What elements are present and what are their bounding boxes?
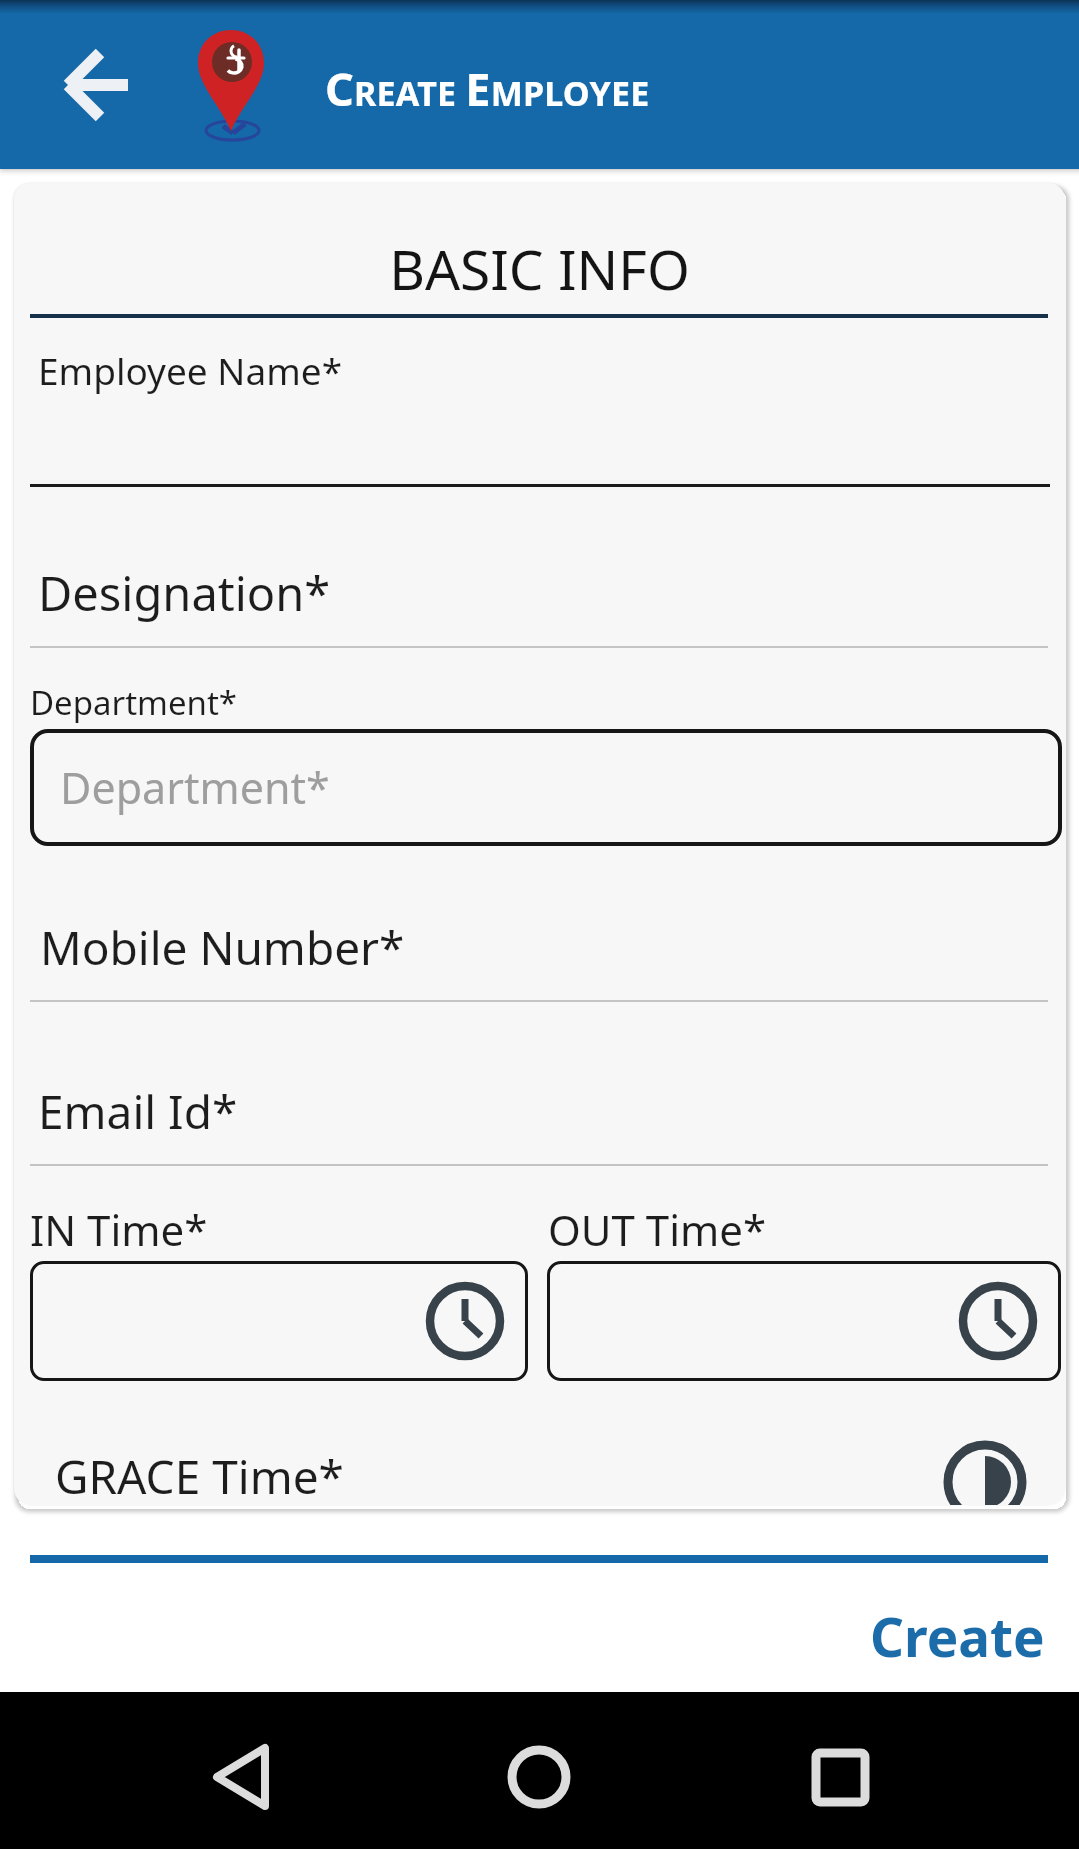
staticText: Create (870, 1600, 1045, 1672)
staticText: IN Time* (30, 1201, 208, 1258)
staticText: CREATE EMPLOYEE (325, 58, 650, 119)
button[interactable] (50, 42, 146, 128)
staticText: Department* (30, 680, 238, 725)
button[interactable] (205, 1740, 280, 1815)
button[interactable]: Create (862, 1596, 1052, 1676)
staticText: Department* (60, 758, 330, 817)
staticText: OUT Time* (548, 1201, 767, 1258)
staticText: BASIC INFO (14, 231, 1065, 306)
button[interactable] (502, 1740, 577, 1815)
button[interactable]: Employee Name* (38, 345, 343, 395)
button[interactable] (30, 1261, 528, 1381)
button[interactable]: Designation* (38, 561, 331, 625)
button[interactable] (803, 1740, 878, 1815)
button[interactable]: Mobile Number* (40, 916, 405, 979)
button[interactable]: Email Id* (38, 1080, 238, 1143)
button[interactable]: GRACE Time* (55, 1445, 344, 1505)
button[interactable]: Department* (30, 729, 1062, 846)
button[interactable] (547, 1261, 1061, 1381)
